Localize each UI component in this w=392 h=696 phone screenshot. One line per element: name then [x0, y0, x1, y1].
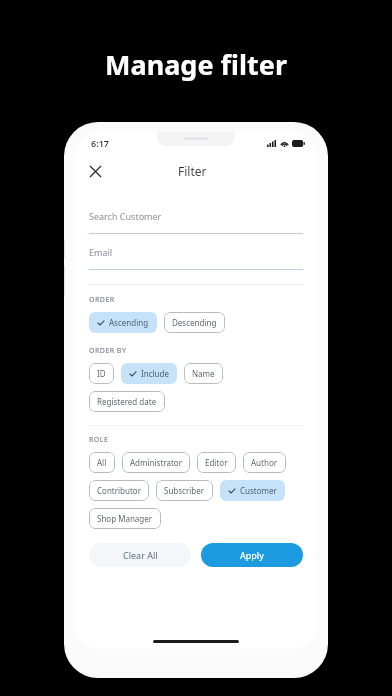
staticText: Clear All: [123, 549, 158, 561]
staticText: Email: [89, 246, 113, 258]
staticText: Subscriber: [164, 485, 205, 496]
staticText: Customer: [240, 485, 277, 496]
button[interactable]: All: [89, 452, 115, 473]
staticText: Ascending: [109, 317, 149, 328]
button[interactable]: Subscriber: [156, 480, 213, 501]
staticText: Filter: [178, 163, 207, 179]
button[interactable]: Contributor: [89, 480, 149, 501]
staticText: Search Customer: [89, 210, 162, 222]
staticText: Manage filter: [105, 46, 288, 83]
staticText: ORDER: [89, 295, 115, 305]
button[interactable]: Name: [184, 363, 223, 384]
staticText: Editor: [205, 457, 228, 468]
button[interactable]: Descending: [164, 312, 225, 333]
staticText: Registered date: [97, 396, 157, 407]
button[interactable]: Include: [121, 363, 177, 384]
staticText: Author: [251, 457, 278, 468]
staticText: 6:17: [91, 137, 109, 149]
staticText: Include: [141, 368, 169, 379]
button[interactable]: Close: [83, 159, 107, 183]
staticText: Shop Manager: [97, 513, 153, 524]
button[interactable]: ID: [89, 363, 114, 384]
staticText: Apply: [240, 549, 264, 561]
staticText: Name: [192, 368, 215, 379]
button[interactable]: Editor: [197, 452, 236, 473]
button[interactable]: Shop Manager: [89, 508, 161, 529]
button[interactable]: Administrator: [122, 452, 190, 473]
button[interactable]: Author: [243, 452, 286, 473]
staticText: All: [97, 457, 107, 468]
button[interactable]: Customer: [220, 480, 285, 501]
button[interactable]: Registered date: [89, 391, 165, 412]
button[interactable]: Ascending: [89, 312, 157, 333]
staticText: ROLE: [89, 435, 109, 445]
staticText: Descending: [172, 317, 217, 328]
staticText: Contributor: [97, 485, 141, 496]
staticText: ORDER BY: [89, 346, 127, 356]
staticText: ID: [97, 368, 106, 379]
staticText: Administrator: [130, 457, 182, 468]
button[interactable]: Apply: [201, 543, 303, 567]
button[interactable]: Clear All: [89, 543, 191, 567]
